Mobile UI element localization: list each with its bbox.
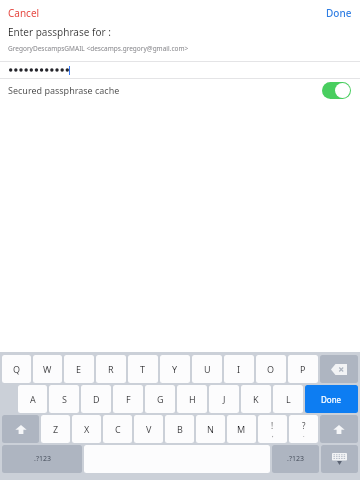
button[interactable]: Done (305, 385, 358, 413)
button[interactable]: B (165, 415, 194, 443)
staticText: .?123 (287, 454, 304, 464)
staticText: , (272, 431, 274, 439)
button[interactable]: O (256, 355, 286, 383)
button[interactable]: D (81, 385, 111, 413)
button[interactable]: C (103, 415, 132, 443)
button[interactable]: L (273, 385, 303, 413)
button[interactable]: Hide keyboard (321, 445, 358, 473)
staticText: C (115, 423, 121, 435)
staticText: F (126, 393, 131, 405)
button[interactable]: ! (258, 415, 287, 443)
staticText: J (223, 393, 226, 405)
staticText: GregoryDescampsGMAIL <descamps.gregory@g… (8, 44, 189, 53)
button[interactable]: Cancel (0, 1, 48, 25)
button[interactable]: S (49, 385, 79, 413)
staticText: M (237, 423, 246, 435)
staticText: S (62, 393, 67, 405)
staticText: L (286, 393, 291, 405)
button[interactable]: Shift (320, 415, 358, 443)
button[interactable]: H (177, 385, 207, 413)
staticText: G (157, 393, 164, 405)
staticText: ? (302, 420, 306, 431)
button[interactable]: Backspace (320, 355, 358, 383)
staticText: Cancel (8, 6, 40, 20)
staticText: U (204, 363, 211, 375)
staticText: Secured passphrase cache (8, 84, 120, 96)
button[interactable]: .?123 (2, 445, 82, 473)
staticText: I (237, 363, 241, 375)
staticText: Z (53, 423, 59, 435)
button[interactable]: Y (160, 355, 190, 383)
staticText: X (84, 423, 90, 435)
staticText: R (108, 363, 114, 375)
button[interactable] (0, 61, 360, 79)
staticText: Q (13, 363, 21, 375)
button[interactable]: W (33, 355, 62, 383)
button[interactable]: Done (318, 1, 360, 25)
button[interactable]: Shift (2, 415, 39, 443)
button[interactable]: P (288, 355, 318, 383)
staticText: ! (271, 420, 274, 431)
staticText: K (253, 393, 259, 405)
button[interactable]: K (241, 385, 271, 413)
button[interactable]: E (64, 355, 94, 383)
staticText: O (267, 363, 275, 375)
staticText: A (30, 393, 36, 405)
staticText: P (300, 363, 306, 375)
button[interactable]: X (72, 415, 101, 443)
staticText: Done (326, 6, 352, 20)
button[interactable]: R (96, 355, 126, 383)
button[interactable]: J (209, 385, 239, 413)
button[interactable]: .?123 (272, 445, 319, 473)
staticText: D (93, 393, 100, 405)
button[interactable]: N (196, 415, 225, 443)
button[interactable]: Secured passphrase cache (322, 82, 351, 99)
button[interactable]: F (113, 385, 143, 413)
staticText: B (177, 423, 183, 435)
button[interactable]: ? (289, 415, 318, 443)
staticText: T (140, 363, 146, 375)
button[interactable]: Z (41, 415, 70, 443)
staticText: . (303, 431, 305, 439)
button[interactable]: U (192, 355, 222, 383)
staticText: V (146, 423, 152, 435)
button[interactable]: M (227, 415, 256, 443)
button[interactable]: V (134, 415, 163, 443)
button[interactable]: Q (2, 355, 31, 383)
staticText: .?123 (34, 454, 51, 464)
button[interactable]: A (18, 385, 47, 413)
button[interactable]: G (145, 385, 175, 413)
staticText: H (189, 393, 196, 405)
staticText: N (207, 423, 214, 435)
staticText: W (43, 363, 52, 375)
staticText: Enter passphrase for : (8, 25, 111, 39)
button[interactable]: T (128, 355, 158, 383)
button[interactable]: I (224, 355, 254, 383)
staticText: Y (172, 363, 178, 375)
staticText: Done (321, 394, 342, 405)
staticText: E (76, 363, 82, 375)
button[interactable]: Secured passphrase cache (0, 79, 360, 101)
